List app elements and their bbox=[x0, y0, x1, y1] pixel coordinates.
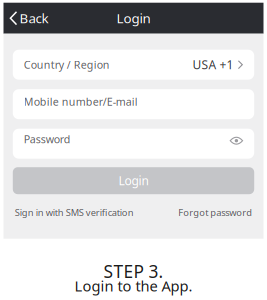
staticText: Sign in with SMS verification bbox=[15, 206, 134, 219]
staticText: Login bbox=[118, 173, 148, 189]
staticText: Login bbox=[116, 9, 150, 27]
staticText: USA +1 bbox=[192, 57, 233, 73]
button[interactable]: Show password bbox=[230, 136, 243, 145]
button[interactable]: Country / Region bbox=[13, 50, 254, 80]
button[interactable]: Forgot password bbox=[178, 206, 252, 219]
staticText: Mobile number/E-mail bbox=[24, 95, 138, 109]
staticText: Back bbox=[19, 9, 48, 27]
staticText: Password bbox=[24, 132, 71, 146]
button[interactable]: Mobile number/E-mail bbox=[13, 89, 254, 119]
staticText: Forgot password bbox=[178, 206, 252, 219]
button[interactable]: Back bbox=[3, 4, 56, 32]
button[interactable]: Sign in with SMS verification bbox=[15, 206, 134, 219]
button[interactable]: Login bbox=[13, 167, 254, 194]
button[interactable]: Password bbox=[13, 129, 254, 159]
staticText: STEP 3. bbox=[103, 260, 163, 283]
staticText: Login to the App. bbox=[74, 276, 192, 295]
staticText: Country / Region bbox=[24, 58, 110, 72]
